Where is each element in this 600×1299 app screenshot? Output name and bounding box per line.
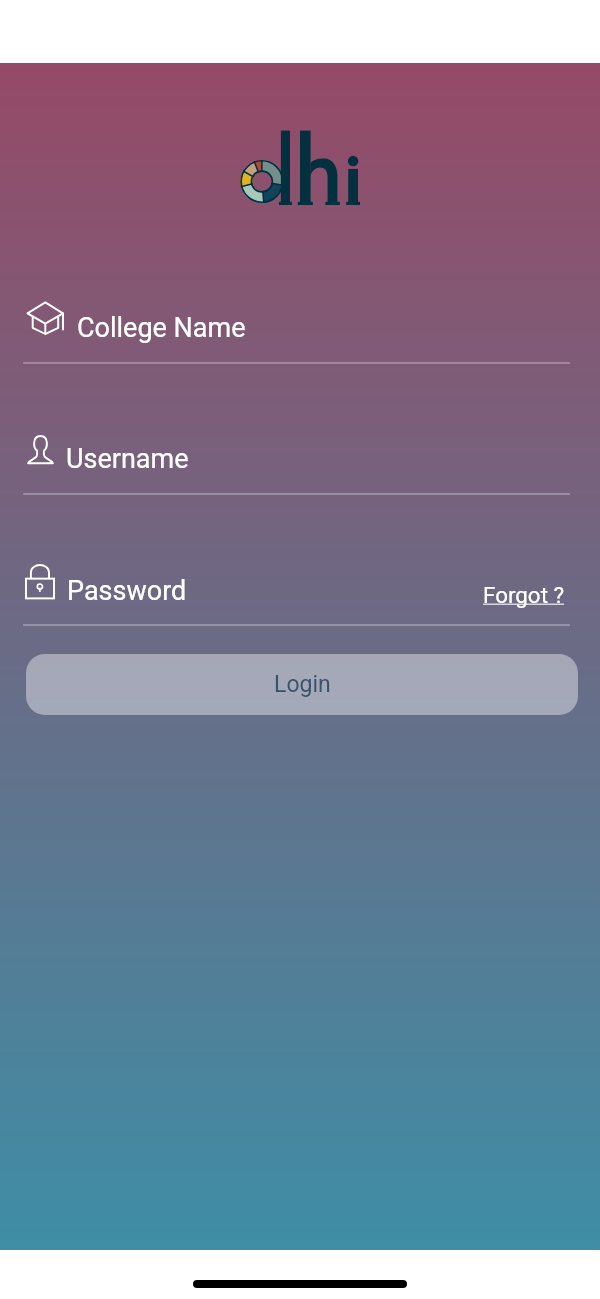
staticText: Login xyxy=(274,671,331,698)
other: College name xyxy=(26,301,64,335)
staticText: Username xyxy=(66,443,189,475)
button[interactable] xyxy=(23,558,570,626)
button[interactable] xyxy=(23,296,570,364)
button[interactable] xyxy=(23,427,570,495)
other: Username xyxy=(27,435,54,464)
staticText: Password xyxy=(67,575,187,607)
button[interactable]: Forgot ? xyxy=(483,582,565,608)
button[interactable]: Login xyxy=(26,654,578,715)
staticText: Forgot ? xyxy=(483,582,565,608)
staticText: College Name xyxy=(77,312,246,344)
other: Password xyxy=(25,562,55,598)
